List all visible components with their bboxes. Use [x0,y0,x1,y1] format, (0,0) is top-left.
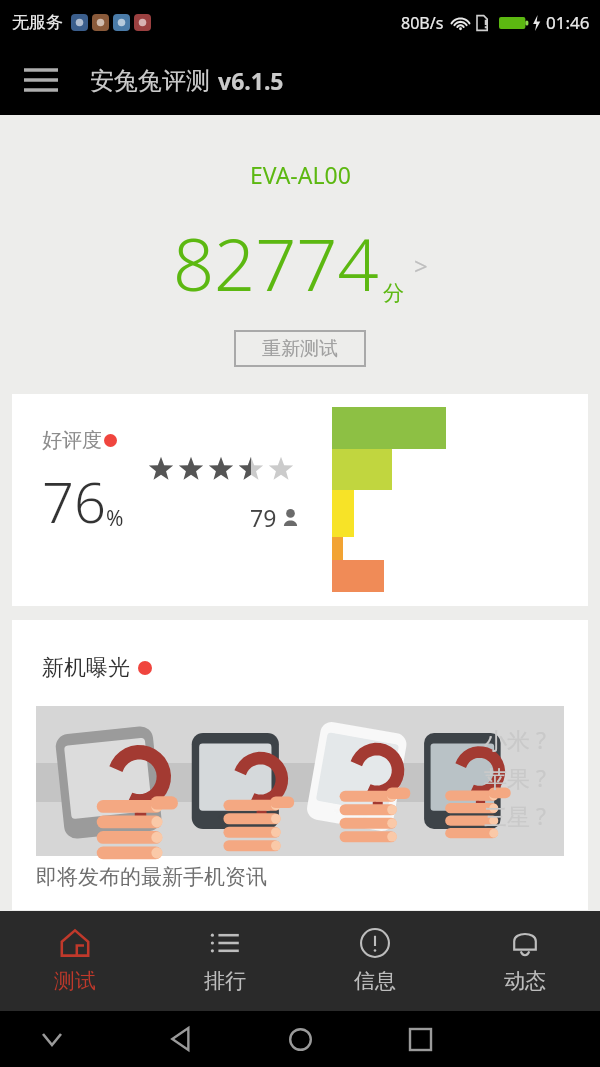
button[interactable]: Back [160,1019,200,1059]
button[interactable]: 重新测试 [234,330,366,367]
button[interactable]: Hide [36,1023,68,1055]
button[interactable]: 信息 [300,911,450,1011]
button[interactable]: Recents [400,1019,440,1059]
staticText: 测试 [54,968,96,994]
button[interactable]: 测试 [0,911,150,1011]
staticText: 01:46 [546,11,590,34]
button[interactable]: Home [280,1019,320,1059]
staticText: 动态 [504,968,546,994]
staticText: v6.1.5 [218,65,284,96]
staticText: 信息 [354,968,396,994]
staticText: 苹果 ? [484,762,546,793]
staticText: 重新测试 [262,337,338,361]
staticText: 76 [42,463,106,539]
staticText: 即将发布的最新手机资讯 [36,864,267,890]
staticText: 新机曝光 [42,654,130,682]
staticText: 好评度 [42,428,102,453]
button[interactable]: 好评度 [12,394,588,606]
button[interactable]: 新机曝光 [12,620,588,910]
staticText: 无服务 [12,12,63,33]
button[interactable]: 排行 [150,911,300,1011]
staticText: 80B/s [401,12,444,34]
button[interactable]: Menu [14,53,68,107]
staticText: > [414,249,428,282]
staticText: 安兔兔评测 [90,66,210,96]
staticText: 排行 [204,968,246,994]
staticText: % [106,504,124,533]
staticText: 三星 ? [484,800,546,831]
button[interactable]: 动态 [450,911,600,1011]
staticText: 分 [383,280,404,306]
staticText: 79 [250,502,277,533]
staticText: 小米 ? [484,724,546,755]
staticText: 82774 [173,214,379,312]
staticText: EVA-AL00 [250,159,351,190]
